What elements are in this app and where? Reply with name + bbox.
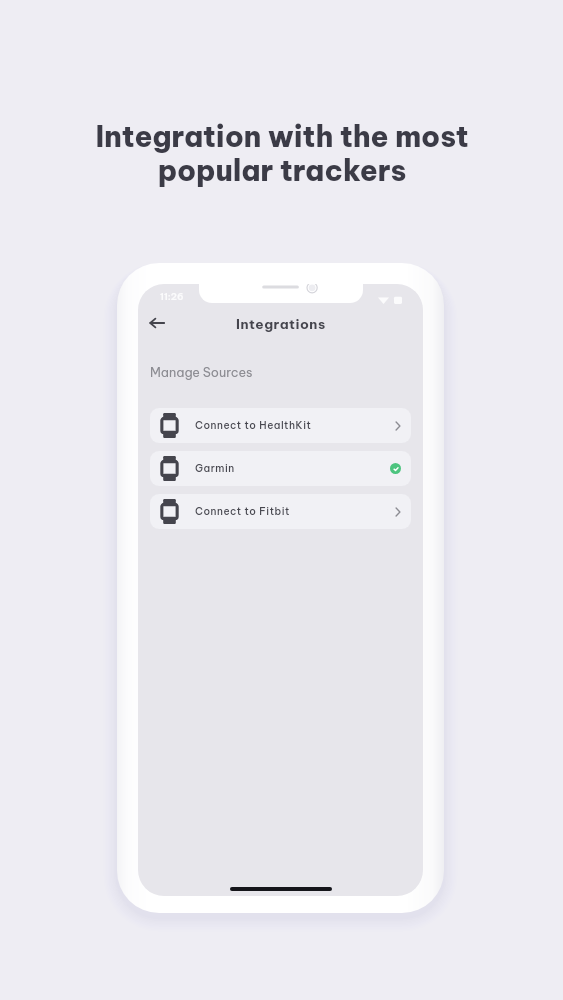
staticText: Connect to HealthKit xyxy=(195,419,312,432)
staticText: 11:26 xyxy=(160,291,184,303)
other: Open xyxy=(395,421,401,431)
staticText: Manage Sources xyxy=(150,364,253,380)
other: Open xyxy=(395,507,401,517)
button[interactable]: Connect to Fitbit xyxy=(150,494,411,529)
staticText: Garmin xyxy=(195,462,235,475)
button[interactable]: Back xyxy=(144,310,170,336)
staticText: Connect to Fitbit xyxy=(195,505,291,518)
button[interactable]: Connect to HealthKit xyxy=(150,408,411,443)
staticText: Integration with the most popular tracke… xyxy=(95,118,469,189)
button[interactable]: Garmin xyxy=(150,451,411,486)
staticText: Integrations xyxy=(236,315,326,332)
